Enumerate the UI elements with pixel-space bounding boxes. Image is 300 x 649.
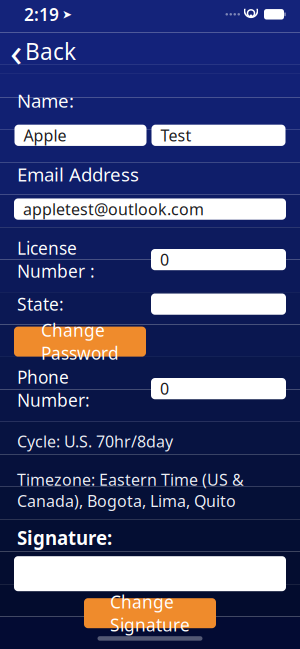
- staticText: Name:: [17, 88, 74, 113]
- staticText: ‹: [10, 25, 22, 78]
- staticText: License Number :: [17, 237, 95, 283]
- staticText: Test: [160, 125, 191, 146]
- staticText: Timezone: Eastern Time (US & Canada), Bo…: [17, 469, 244, 511]
- button[interactable]: ‹: [0, 29, 88, 73]
- staticText: Phone Number:: [17, 366, 90, 412]
- staticText: Back: [25, 36, 76, 66]
- staticText: Cycle: U.S. 70hr/8day: [17, 431, 173, 452]
- staticText: 0: [160, 378, 169, 399]
- button[interactable]: Change Password: [14, 327, 146, 357]
- staticText: appletest@outlook.com: [23, 198, 204, 220]
- staticText: ➤: [62, 7, 72, 21]
- staticText: 0: [160, 249, 169, 270]
- staticText: Apple: [23, 125, 66, 146]
- staticText: 2:19: [24, 3, 59, 26]
- staticText: Change Signature: [110, 590, 190, 636]
- button[interactable]: Change Signature: [84, 598, 216, 628]
- staticText: Change Password: [41, 319, 119, 365]
- staticText: Email Address: [17, 162, 139, 187]
- staticText: State:: [17, 293, 64, 316]
- staticText: Signature:: [17, 525, 112, 550]
